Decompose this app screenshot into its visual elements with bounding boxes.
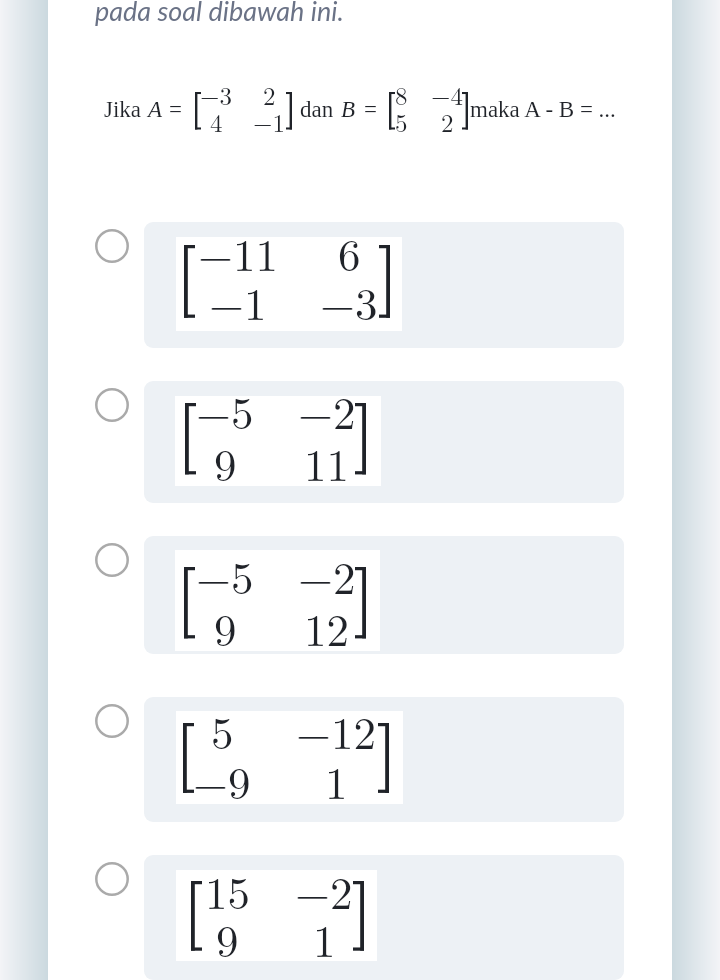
staticText: A (148, 97, 163, 122)
button[interactable]: Answer option (48, 697, 624, 822)
staticText: = (364, 97, 377, 122)
staticText: −5 (196, 543, 254, 607)
staticText: −9 (193, 748, 251, 812)
button[interactable]: Answer option (48, 855, 624, 980)
staticText: 5 (211, 698, 234, 762)
staticText: −1 (253, 104, 285, 139)
button[interactable]: Answer option (48, 222, 624, 348)
staticText: 11 (304, 430, 350, 494)
staticText: maka A - B = ... (470, 97, 616, 122)
staticText: 2 (263, 77, 276, 112)
staticText: 9 (214, 595, 237, 659)
staticText: 4 (210, 104, 223, 139)
button[interactable]: Answer option (48, 381, 624, 503)
staticText: −4 (431, 77, 463, 112)
staticText: −2 (295, 858, 353, 922)
staticText: 1 (325, 748, 348, 812)
staticText: −11 (198, 220, 279, 284)
staticText: B (341, 97, 356, 122)
staticText: −2 (298, 378, 356, 442)
staticText: 6 (338, 220, 361, 284)
staticText: −12 (296, 698, 377, 762)
staticText: 8 (395, 77, 408, 112)
staticText: pada soal dibawah ini. (95, 0, 344, 26)
staticText: −3 (200, 77, 232, 112)
button[interactable]: Answer option (48, 536, 624, 654)
staticText: 5 (395, 104, 408, 139)
staticText: = (169, 97, 182, 122)
staticText: 12 (304, 595, 350, 659)
staticText: dan (300, 97, 334, 122)
staticText: 2 (441, 104, 454, 139)
staticText: 1 (313, 906, 336, 970)
staticText: −2 (298, 543, 356, 607)
staticText: 15 (205, 858, 251, 922)
staticText: −3 (320, 269, 378, 333)
staticText: 9 (214, 430, 237, 494)
staticText: −1 (209, 269, 267, 333)
staticText: −5 (196, 378, 254, 442)
staticText: Jika (104, 97, 142, 122)
staticText: 9 (216, 906, 239, 970)
